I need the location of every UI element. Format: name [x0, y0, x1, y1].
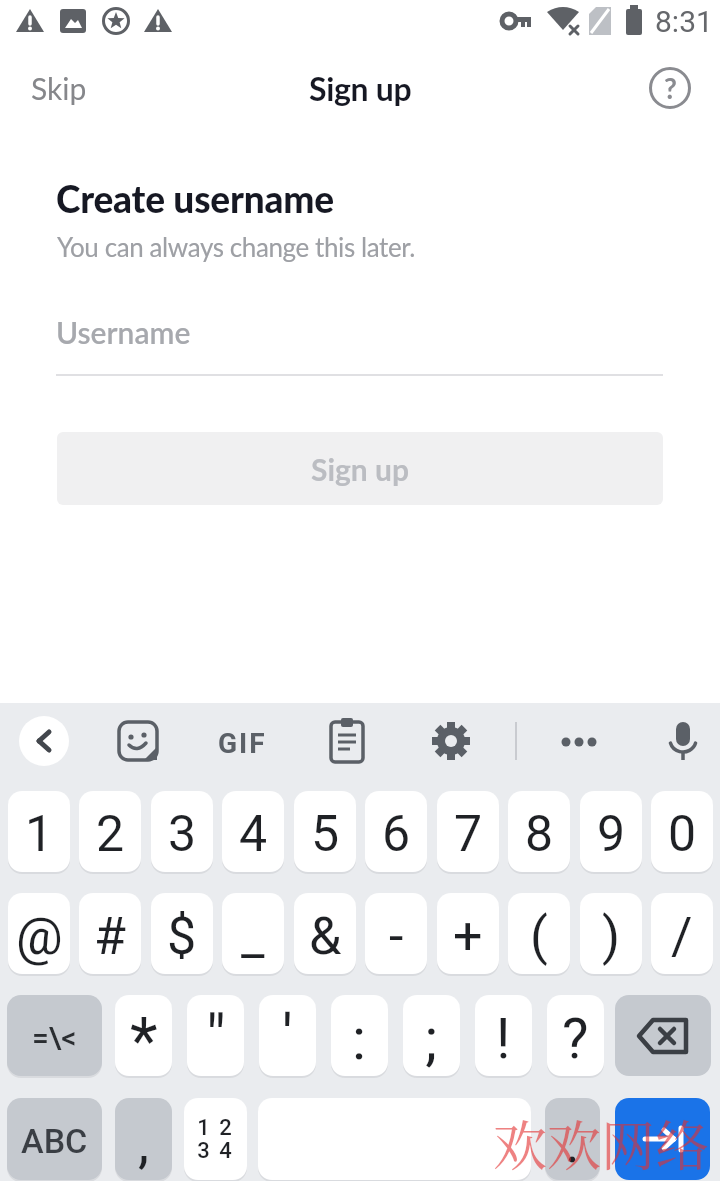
staticText: You can always change this later.	[57, 231, 416, 262]
button[interactable]: 4	[222, 791, 284, 872]
staticText: ?	[664, 71, 677, 105]
staticText: +	[453, 906, 483, 967]
staticText: /	[671, 906, 693, 967]
button[interactable]: .	[545, 1098, 600, 1180]
staticText: &	[309, 906, 342, 967]
button[interactable]: !	[475, 995, 532, 1076]
staticText: :	[352, 1005, 367, 1073]
staticText: _	[241, 906, 265, 967]
staticText: 8:31	[655, 4, 713, 39]
button[interactable]	[322, 716, 372, 766]
staticText: 0	[668, 805, 697, 864]
staticText: 3	[168, 805, 197, 864]
button[interactable]: -	[365, 893, 427, 974]
staticText: ;	[425, 1005, 438, 1073]
staticText: 7	[454, 805, 483, 864]
button[interactable]: ABC	[7, 1098, 102, 1180]
button[interactable]: 1 2 3 4	[184, 1098, 247, 1180]
button[interactable]: GIF	[218, 727, 267, 760]
button[interactable]: 3	[151, 791, 213, 872]
button[interactable]	[113, 716, 163, 766]
button[interactable]	[426, 716, 476, 766]
staticText: Sign up	[309, 69, 412, 107]
staticText: 6	[382, 805, 411, 864]
button[interactable]: =\<	[7, 995, 102, 1076]
staticText: 8	[525, 805, 554, 864]
staticText: 欢欢网络	[493, 1104, 709, 1181]
button[interactable]: @	[8, 893, 70, 974]
staticText: Create username	[56, 176, 334, 220]
staticText: ?	[562, 1006, 589, 1072]
staticText: *	[130, 1004, 158, 1076]
button[interactable]: ,	[115, 1098, 172, 1180]
button[interactable]: 8	[508, 791, 570, 872]
staticText: )	[602, 906, 621, 967]
staticText: .	[565, 1110, 580, 1176]
staticText: 2	[96, 805, 125, 864]
button[interactable]: *	[115, 995, 172, 1076]
staticText: '	[282, 1000, 293, 1073]
button[interactable]: +	[437, 893, 499, 974]
staticText: (	[530, 906, 548, 967]
button[interactable]: ;	[403, 995, 460, 1076]
button[interactable]: Skip	[31, 70, 87, 106]
button[interactable]: &	[294, 893, 356, 974]
button[interactable]: 9	[580, 791, 642, 872]
button[interactable]: 7	[437, 791, 499, 872]
staticText: 4	[239, 805, 268, 864]
button[interactable]: "	[187, 995, 244, 1076]
staticText: 1	[25, 805, 54, 864]
button[interactable]: (	[508, 893, 570, 974]
staticText: Sign up	[311, 451, 410, 487]
staticText: @	[16, 906, 63, 967]
staticText: #	[94, 906, 127, 967]
button[interactable]: 2	[79, 791, 141, 872]
button[interactable]: Sign up	[57, 432, 663, 505]
staticText: 9	[597, 805, 626, 864]
button[interactable]: ?	[547, 995, 604, 1076]
button[interactable]: ?	[649, 67, 691, 109]
button[interactable]	[19, 716, 69, 766]
button[interactable]: $	[151, 893, 213, 974]
staticText: !	[496, 1006, 511, 1072]
staticText: ,	[138, 1110, 150, 1176]
button[interactable]: 1	[8, 791, 70, 872]
button[interactable]: 0	[651, 791, 713, 872]
button[interactable]: #	[79, 893, 141, 974]
staticText: $	[167, 906, 197, 967]
staticText: 1 2 3 4	[197, 1115, 234, 1164]
button[interactable]: _	[222, 893, 284, 974]
staticText: Username	[56, 314, 191, 350]
button[interactable]: Username	[56, 300, 663, 376]
button[interactable]: 6	[365, 791, 427, 872]
staticText: -	[389, 906, 404, 967]
button[interactable]: /	[651, 893, 713, 974]
button[interactable]	[615, 995, 711, 1076]
button[interactable]	[554, 716, 604, 766]
button[interactable]	[658, 716, 708, 766]
button[interactable]: )	[580, 893, 642, 974]
staticText: =\<	[32, 1020, 77, 1055]
button[interactable]	[615, 1098, 710, 1180]
button[interactable]: 5	[294, 791, 356, 872]
button[interactable]: '	[259, 995, 316, 1076]
staticText: ABC	[21, 1121, 88, 1161]
button[interactable]: :	[331, 995, 388, 1076]
button[interactable]	[258, 1098, 531, 1180]
staticText: 5	[311, 805, 340, 864]
staticText: "	[206, 1000, 226, 1073]
